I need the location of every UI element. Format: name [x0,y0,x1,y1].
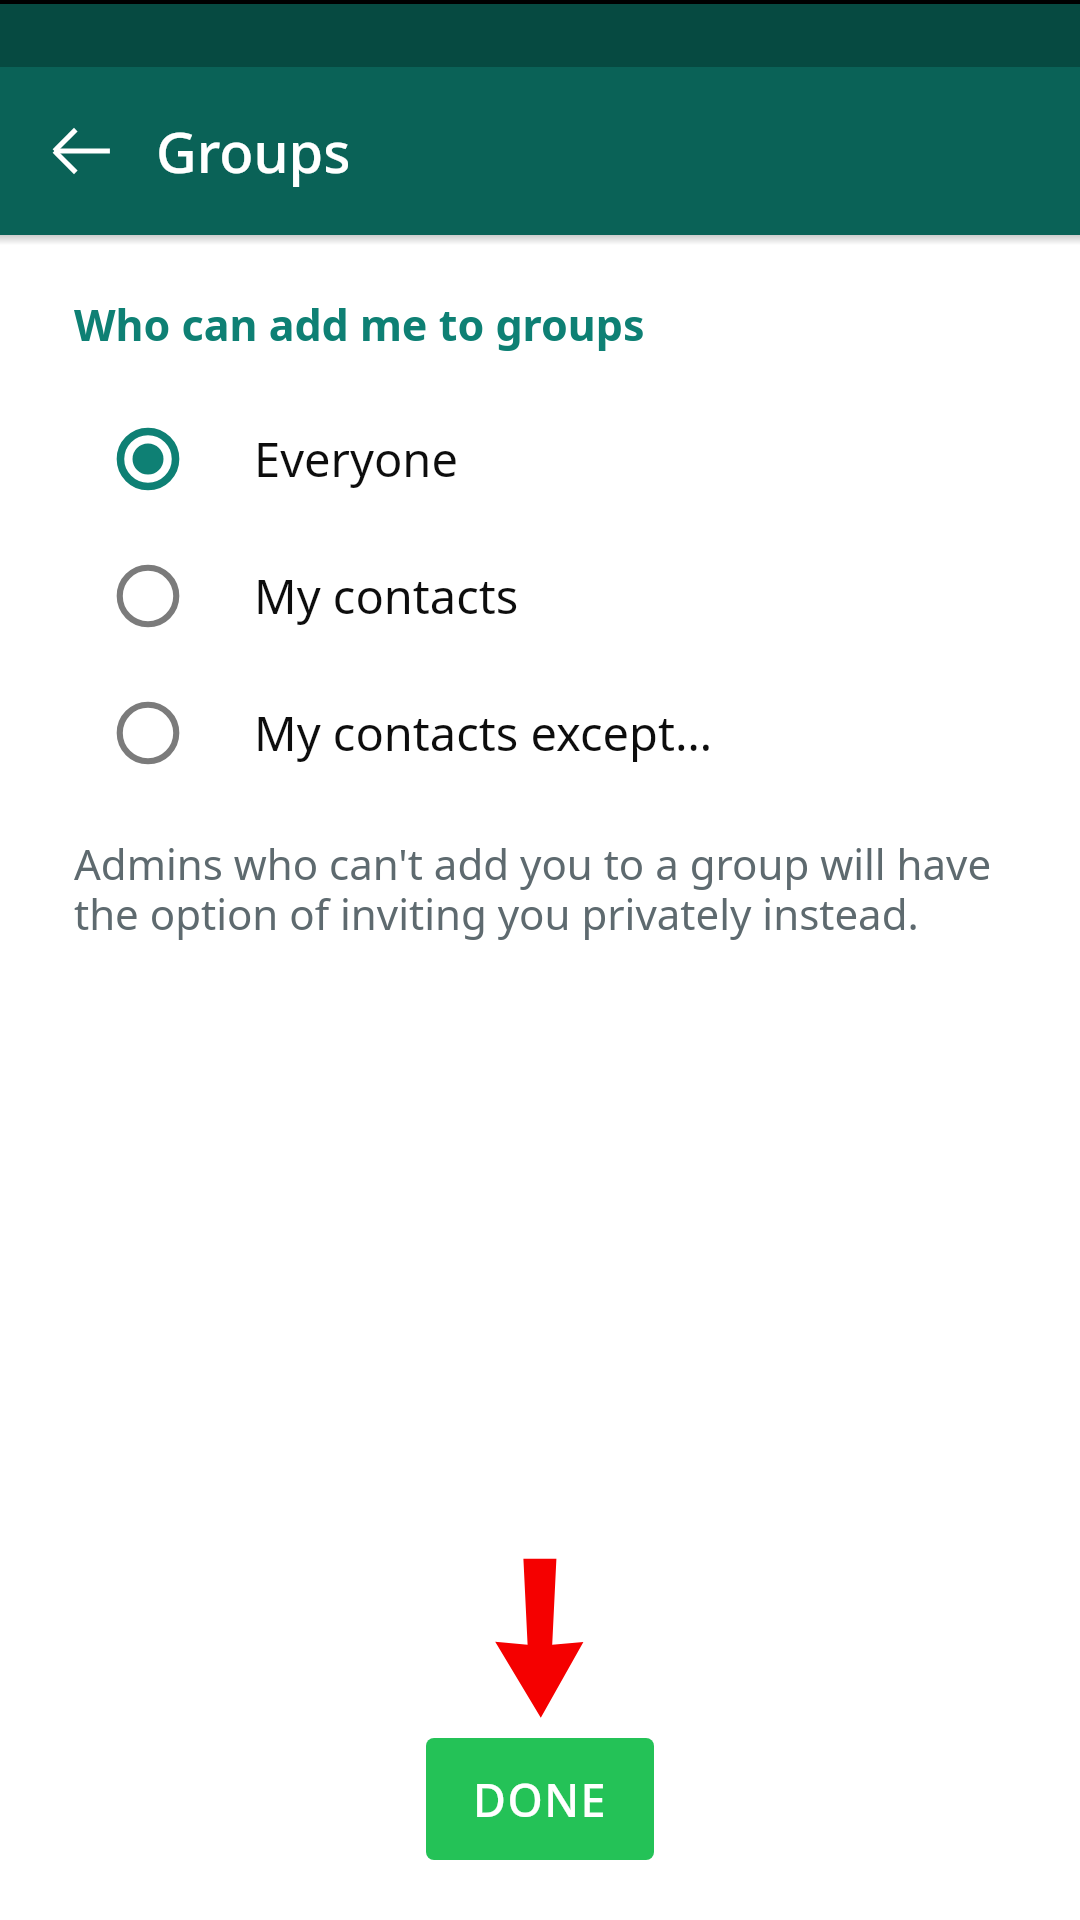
staticText: My contacts [254,564,519,628]
staticText: DONE [473,1769,608,1830]
button[interactable]: My contacts [0,527,1080,664]
button[interactable]: Everyone [0,390,1080,527]
button[interactable]: Back [34,103,130,199]
staticText: Admins who can't add you to a group will… [74,835,1014,943]
staticText: Everyone [254,427,458,491]
staticText: Groups [156,113,351,189]
button[interactable]: My contacts except… [0,664,1080,801]
staticText: Who can add me to groups [74,295,645,354]
button[interactable]: DONE [426,1738,654,1860]
staticText: My contacts except… [254,701,713,765]
